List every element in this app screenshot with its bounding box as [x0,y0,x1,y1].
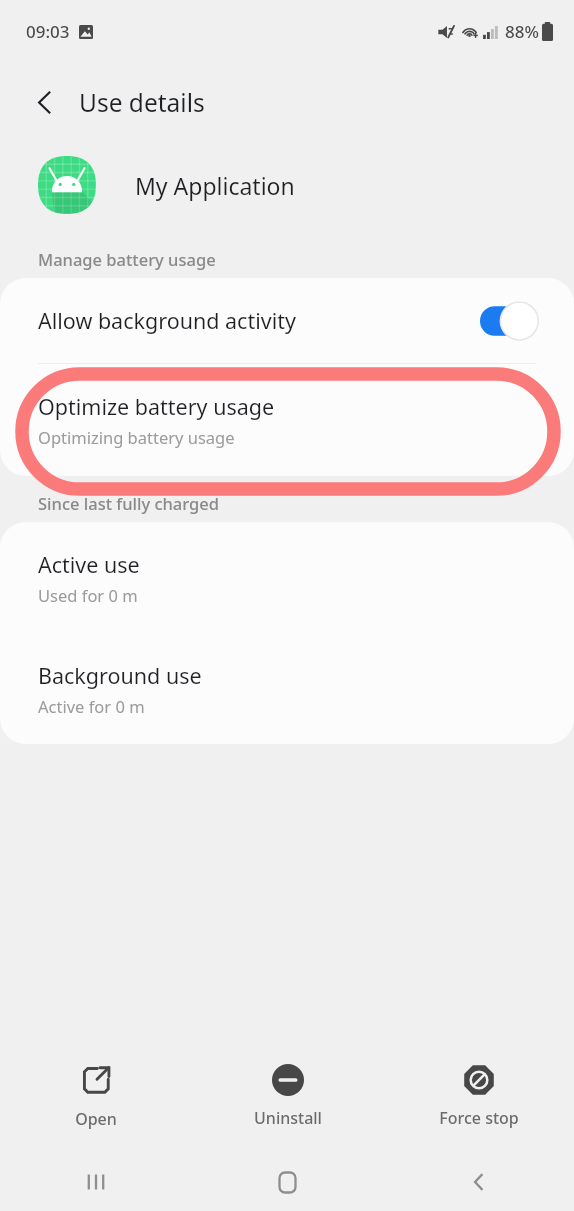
button[interactable]: Uninstall [192,1039,383,1153]
staticText: My Application [135,170,295,201]
button[interactable]: Force stop [383,1039,574,1153]
button[interactable]: Home [192,1153,383,1211]
staticText: Open [75,1108,117,1130]
staticText: Optimize battery usage [38,392,275,421]
staticText: 09:03 [26,20,70,43]
staticText: Allow background activity [38,306,480,335]
staticText: Uninstall [254,1107,322,1129]
staticText: Force stop [439,1107,519,1129]
button[interactable]: Optimize battery usage [0,364,574,476]
button[interactable]: Active use [0,522,574,633]
staticText: Used for 0 m [38,584,138,606]
staticText: 88% [505,20,539,43]
staticText: Background use [38,661,202,690]
button[interactable]: Allow background activity [480,300,544,342]
staticText: Optimizing battery usage [38,426,235,448]
staticText: Since last fully charged [38,492,220,514]
button[interactable]: Background use [0,633,574,744]
button[interactable]: Allow background activity [0,278,574,363]
button[interactable]: Open [0,1039,192,1153]
button[interactable]: Back [20,78,68,126]
staticText: Active use [38,550,140,579]
button[interactable]: Back [383,1153,574,1211]
staticText: Manage battery usage [38,248,216,270]
staticText: Active for 0 m [38,695,145,717]
staticText: Use details [79,86,205,119]
button[interactable]: Recent apps [0,1153,192,1211]
